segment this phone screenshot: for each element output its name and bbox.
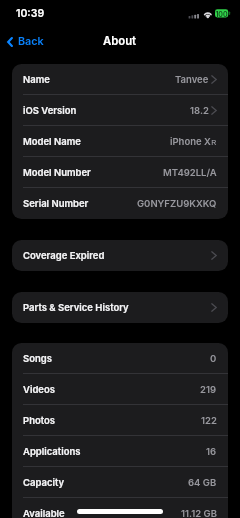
button[interactable]: Coverage Expired [12, 240, 228, 271]
button[interactable]: Videos [12, 374, 228, 405]
staticText: 16 [206, 446, 217, 457]
staticText: 11.12 GB [181, 508, 217, 518]
button[interactable]: Model Number [12, 157, 228, 188]
staticText: iPhone Xʀ [170, 135, 217, 148]
staticText: Name [23, 74, 50, 85]
staticText: 64 GB [188, 477, 217, 488]
staticText: About [103, 34, 137, 48]
staticText: Tanvee [175, 74, 209, 85]
staticText: 219 [200, 384, 217, 395]
staticText: iOS Version [23, 105, 77, 116]
button[interactable]: iOS Version [12, 95, 228, 126]
button[interactable]: Applications [12, 436, 228, 467]
button[interactable]: Capacity [12, 467, 228, 498]
staticText: 100 [215, 10, 228, 18]
staticText: Capacity [23, 477, 65, 488]
staticText: Parts & Service History [23, 302, 129, 313]
button[interactable]: Available [12, 498, 228, 518]
staticText: Videos [23, 384, 55, 395]
button[interactable]: Photos [12, 405, 228, 436]
staticText: Serial Number [23, 198, 89, 209]
staticText: Model Number [23, 167, 91, 178]
staticText: Photos [23, 415, 55, 426]
button[interactable]: Serial Number [12, 188, 228, 219]
button[interactable]: Model Name [12, 126, 228, 157]
staticText: G0NYFZU9KXKQ [137, 198, 217, 209]
staticText: 10:39 [16, 7, 45, 20]
staticText: 0 [210, 353, 217, 364]
button[interactable]: Parts & Service History [12, 292, 228, 323]
staticText: Applications [23, 446, 81, 457]
staticText: Model Name [23, 136, 81, 147]
staticText: Available [23, 508, 65, 518]
staticText: Coverage Expired [23, 250, 105, 261]
staticText: Back [18, 35, 44, 48]
staticText: Songs [23, 353, 52, 364]
staticText: MT492LL/A [163, 167, 217, 178]
button[interactable]: Name [12, 64, 228, 95]
staticText: 18.2 [190, 105, 209, 116]
button[interactable]: Songs [12, 343, 228, 374]
staticText: 122 [201, 415, 217, 426]
button[interactable]: Back [0, 29, 52, 54]
